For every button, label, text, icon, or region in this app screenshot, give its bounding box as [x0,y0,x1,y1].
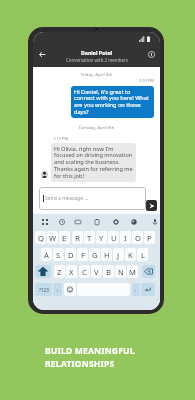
staticText: R [75,233,80,243]
button[interactable]: I [120,231,131,244]
button[interactable]: E [59,231,70,244]
button[interactable]: Y [96,231,107,244]
staticText: X [69,267,74,277]
staticText: P [147,233,152,243]
staticText: Friday, April 4th [33,71,160,77]
button[interactable]: M [127,265,138,278]
button[interactable]: G [89,248,100,261]
button[interactable]: K [125,248,136,261]
staticText: U [111,233,117,243]
staticText: N [118,267,124,277]
button[interactable]: Enter [141,283,155,296]
staticText: S [56,250,61,260]
staticText: ?123 [39,287,49,293]
button[interactable]: Clipboard [92,217,101,226]
button[interactable]: O [132,231,143,244]
button[interactable]: Send a message ... [39,187,146,210]
staticText: 2:10 PM [33,78,154,83]
button[interactable]: . [132,283,140,296]
button[interactable]: R [72,231,83,244]
staticText: V [94,267,99,277]
button[interactable]: Send [146,200,157,211]
staticText: G [92,250,98,260]
staticText: 1:19 PM [53,136,69,141]
button[interactable]: Emoji [64,283,76,296]
button[interactable]: , [53,283,62,296]
button[interactable]: J [113,248,124,261]
button[interactable]: Recent [57,217,66,226]
staticText: Q [38,233,44,243]
staticText: Hi Olivia, right now I'm focused on driv… [54,145,133,180]
button[interactable]: Apps [40,217,49,226]
staticText: L [141,250,145,260]
button[interactable]: Q [35,231,46,244]
button[interactable]: L [137,248,148,261]
staticText: A [44,250,49,260]
button[interactable]: D [65,248,76,261]
button[interactable]: V [91,265,102,278]
button[interactable]: Backspace [142,265,155,278]
staticText: C [82,267,87,277]
button[interactable]: Stickers [129,217,138,226]
button[interactable]: P [144,231,155,244]
button[interactable]: N [115,265,126,278]
button[interactable]: C [79,265,90,278]
staticText: E [62,233,67,243]
button[interactable]: Settings [111,217,120,226]
staticText: D [68,250,74,260]
button[interactable]: Shift [35,265,51,278]
button[interactable]: A [41,248,52,261]
button[interactable]: Voice input [150,217,159,226]
staticText: J [117,250,120,260]
staticText: M [129,267,136,277]
button[interactable]: Hi Olivia, right now I'm focused on driv… [51,143,136,182]
staticText: Z [57,267,62,277]
button[interactable]: Back [35,47,49,61]
staticText: Daniel Patel [81,49,113,56]
staticText: O [135,233,141,243]
staticText: F [81,250,85,260]
button[interactable]: S [53,248,64,261]
staticText: H [104,250,110,260]
staticText: B [106,267,111,277]
button[interactable]: F [77,248,88,261]
staticText: Tuesday, April 8th [33,124,160,130]
button[interactable]: W [47,231,58,244]
button[interactable]: ?123 [35,283,52,296]
staticText: Send a message ... [45,195,89,202]
staticText: Conversation with 2 members [66,57,128,63]
button[interactable]: B [103,265,114,278]
staticText: Hi Daniel, it's great to connect with yo… [74,88,151,116]
button[interactable]: Hi Daniel, it's great to connect with yo… [71,86,154,118]
button[interactable]: U [108,231,119,244]
staticText: , [57,286,59,293]
staticText: W [49,233,57,243]
button[interactable]: T [84,231,95,244]
button[interactable]: X [66,265,77,278]
staticText: Y [99,233,104,243]
staticText: I [124,233,127,243]
staticText: BUILD MEANINGFUL RELATIONSHIPS [45,345,135,370]
button[interactable]: H [101,248,112,261]
button[interactable]: Conversation info [144,47,158,61]
staticText: . [135,286,137,293]
staticText: K [128,250,133,260]
staticText: T [87,233,92,243]
button[interactable]: GIF [73,217,82,226]
button[interactable]: Z [54,265,65,278]
